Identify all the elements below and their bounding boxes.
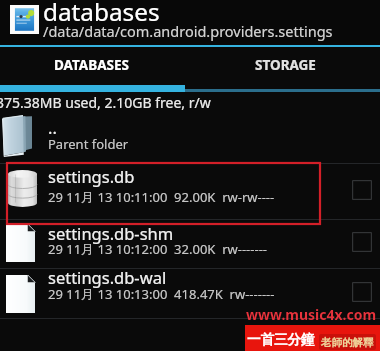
button[interactable]: Select settings.db	[336, 164, 380, 219]
staticText: STORAGE	[255, 56, 316, 74]
staticText: DATABASES	[54, 56, 129, 74]
button[interactable]: settings.db-wal	[0, 269, 380, 318]
button[interactable]: settings.db	[0, 164, 380, 219]
button[interactable]: Select settings.db-wal	[336, 269, 380, 318]
staticText: 29 11月 13 10:12:00 32.00K rw-------	[48, 240, 268, 258]
button[interactable]: STORAGE	[190, 47, 380, 85]
staticText: ..	[48, 116, 57, 138]
staticText: databases	[43, 0, 160, 28]
button[interactable]: ..	[0, 110, 380, 163]
staticText: settings.db-wal	[48, 266, 167, 288]
button[interactable]: DATABASES	[0, 47, 190, 85]
staticText: 375.38MB used, 2.10GB free, r/w	[0, 93, 211, 111]
button[interactable]: settings.db-shm	[0, 220, 380, 268]
staticText: settings.db-shm	[48, 222, 174, 244]
staticText: settings.db	[48, 165, 135, 187]
staticText: /data/data/com.android.providers.setting…	[43, 21, 333, 41]
staticText: Parent folder	[48, 135, 129, 153]
button[interactable]: Select settings.db-shm	[336, 220, 380, 268]
button[interactable]: 一首三分鐘	[245, 325, 380, 351]
staticText: 老師的解釋	[321, 336, 374, 349]
staticText: www.music4x.com	[246, 305, 377, 324]
staticText: 一首三分鐘	[247, 331, 315, 348]
staticText: 29 11月 13 10:11:00 92.00K rw-rw----	[48, 188, 275, 206]
staticText: 29 11月 13 10:13:00 418.47K rw-------	[48, 285, 275, 303]
